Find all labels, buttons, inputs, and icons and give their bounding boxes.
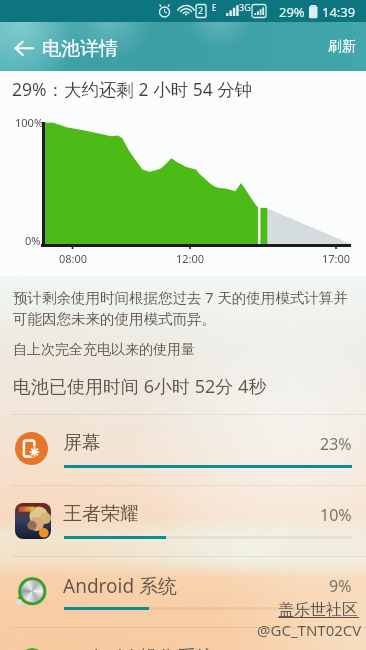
staticText: 9%: [329, 575, 352, 597]
staticText: 2: [198, 4, 204, 16]
staticText: 王者荣耀: [63, 502, 139, 526]
staticText: 电池详情: [42, 37, 118, 61]
button[interactable]: Android 系统: [0, 557, 366, 627]
staticText: 08:00: [59, 251, 88, 266]
staticText: 自上次完全充电以来的使用量: [13, 341, 195, 359]
button[interactable]: Back: [4, 22, 44, 71]
staticText: 12:00: [176, 251, 205, 266]
staticText: E: [212, 2, 217, 13]
staticText: @GC_TNT02CV: [257, 620, 362, 640]
staticText: 刷新: [328, 38, 356, 56]
staticText: Android 操作系统: [63, 644, 216, 650]
staticText: 29%：大约还剩 2 小时 54 分钟: [12, 77, 253, 101]
staticText: 屏幕: [63, 431, 101, 455]
button[interactable]: 王者荣耀: [0, 486, 366, 556]
staticText: 14:39: [322, 3, 356, 21]
button[interactable]: 屏幕: [0, 415, 366, 485]
staticText: 17:00: [322, 251, 351, 266]
button[interactable]: Android 操作系统: [0, 628, 366, 650]
button[interactable]: 刷新: [312, 26, 366, 68]
staticText: 10%: [320, 504, 352, 526]
staticText: 29%: [279, 3, 305, 21]
staticText: 23%: [320, 433, 352, 455]
staticText: 预计剩余使用时间根据您过去 7 天的使用模式计算并 可能因您未来的使用模式而异。: [13, 287, 348, 329]
staticText: 3G: [239, 1, 251, 13]
staticText: 盖乐世社区: [278, 600, 358, 620]
staticText: 电池已使用时间 6小时 52分 4秒: [13, 374, 267, 399]
staticText: 100%: [15, 115, 44, 130]
staticText: 0%: [25, 233, 41, 248]
staticText: Android 系统: [63, 573, 178, 599]
